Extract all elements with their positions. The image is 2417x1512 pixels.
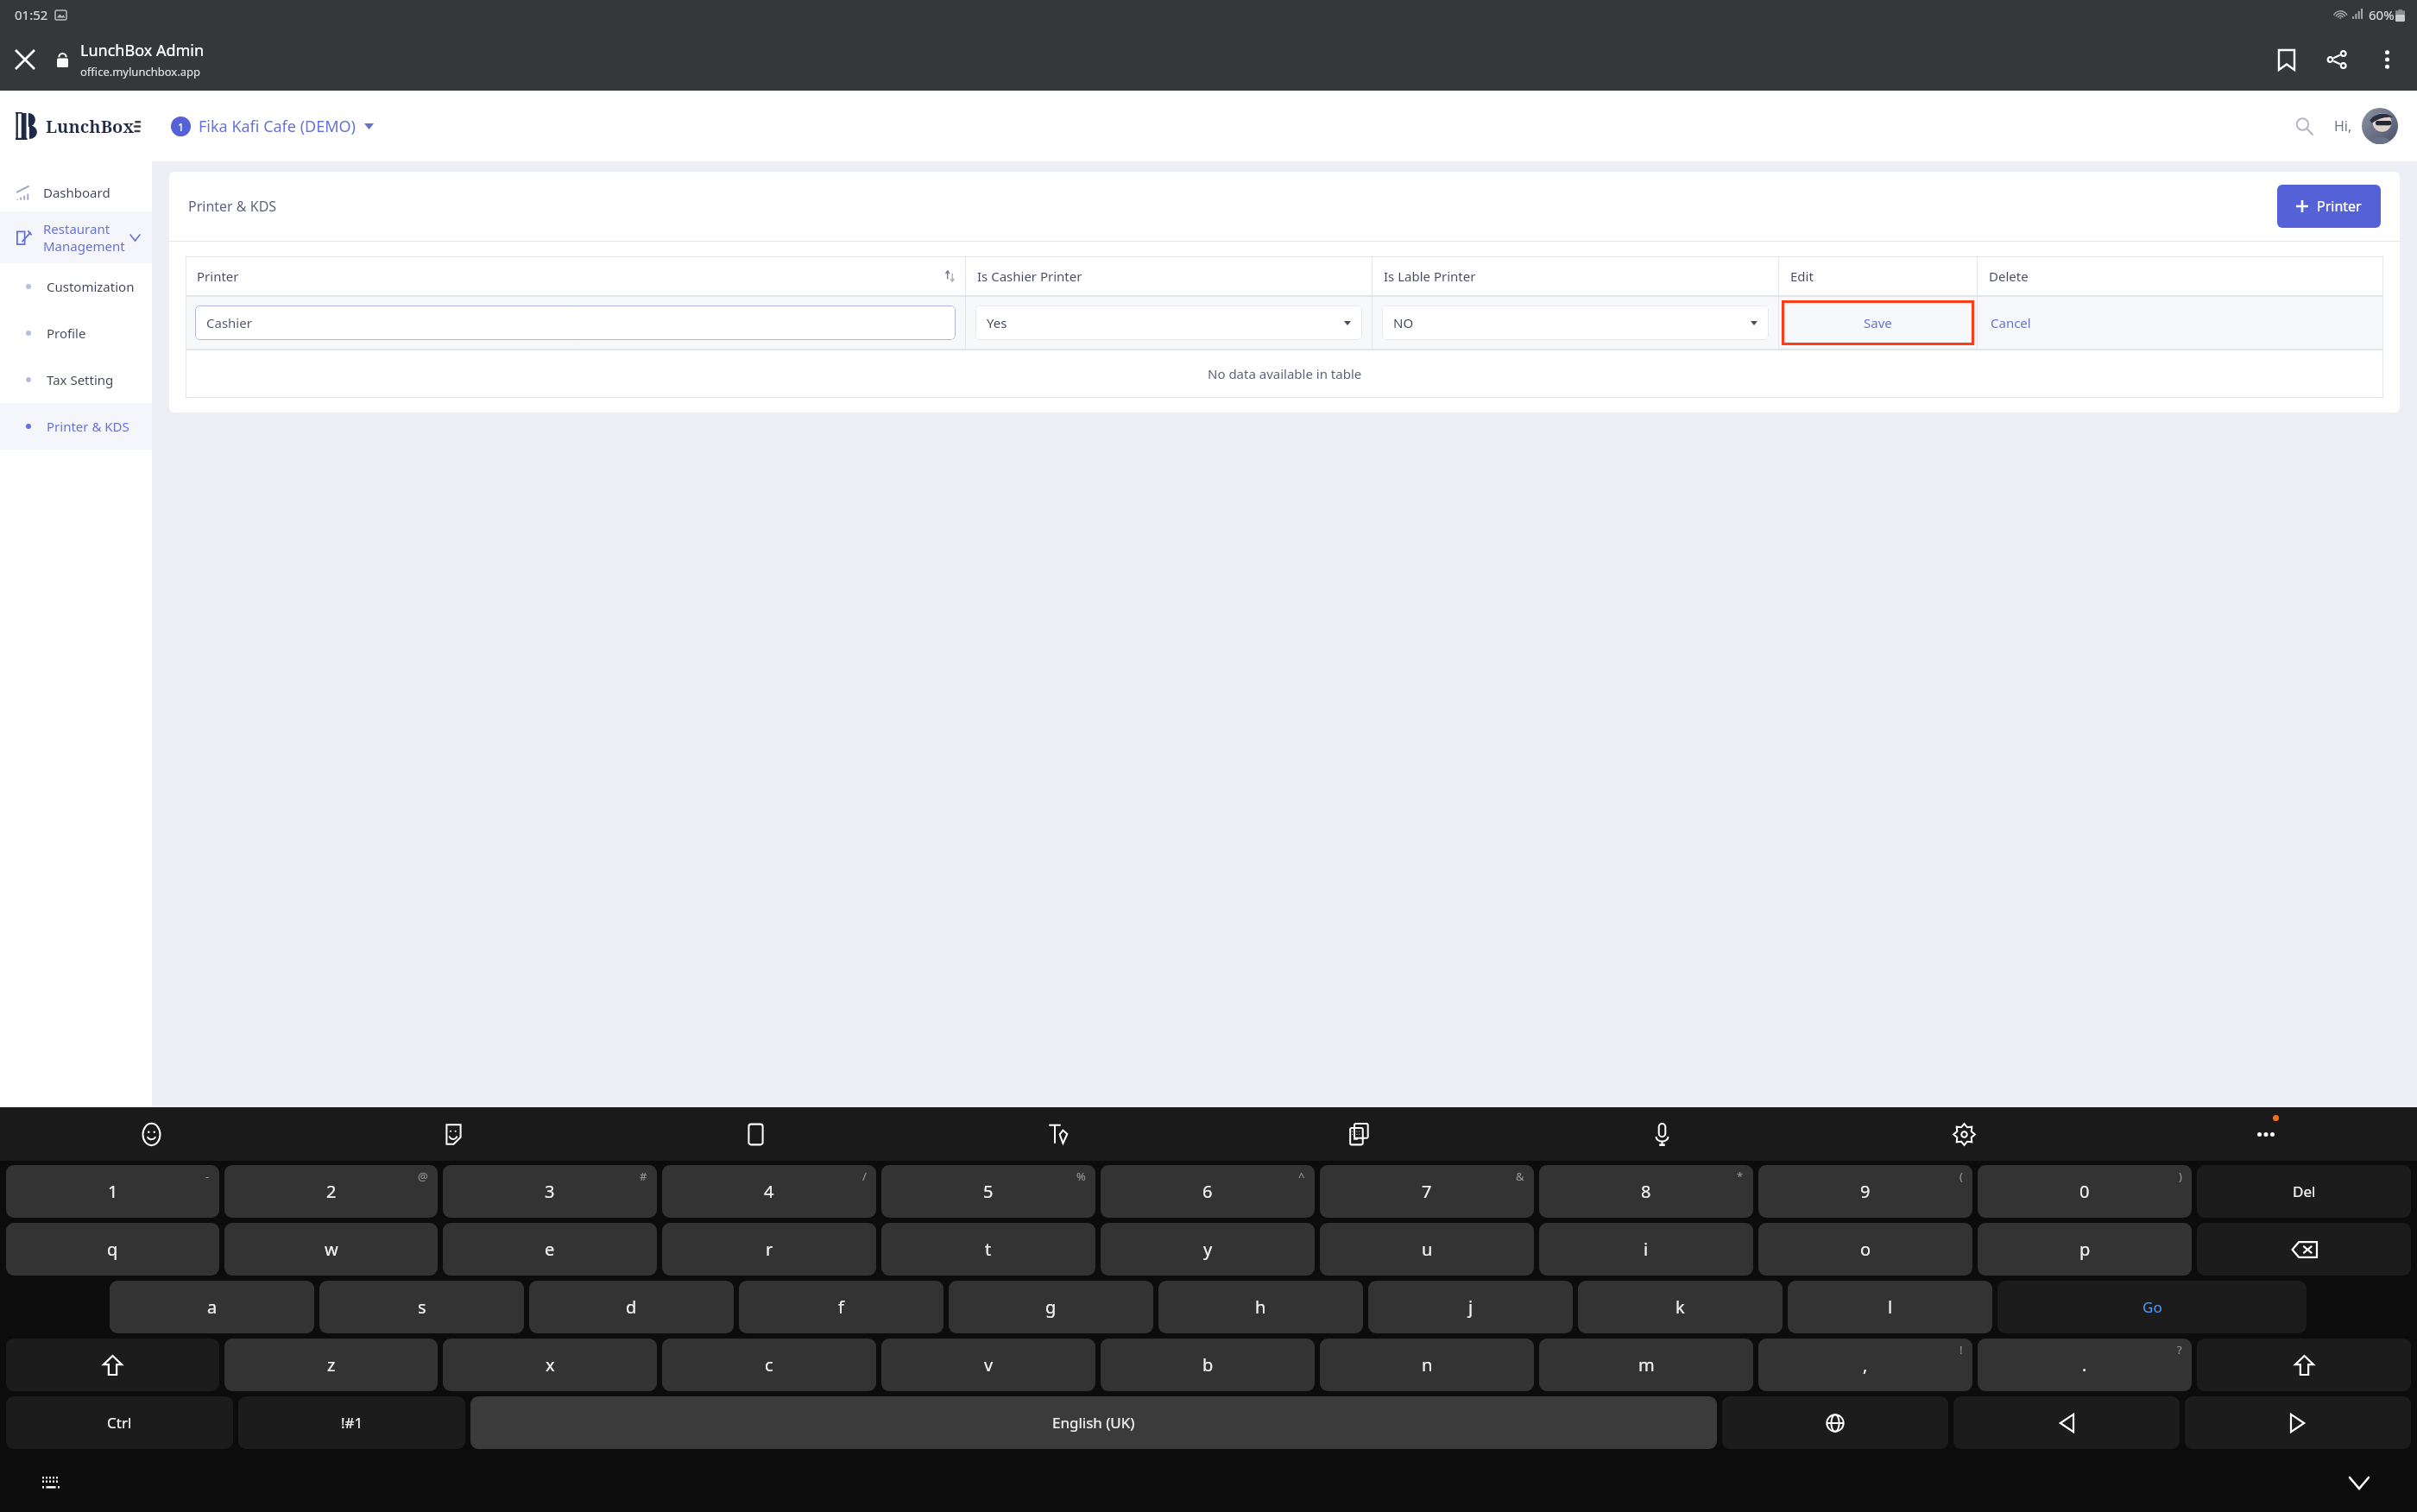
button[interactable]: Go bbox=[1997, 1281, 2307, 1333]
button[interactable]: right bbox=[2185, 1396, 2411, 1449]
button[interactable]: 6 bbox=[1101, 1165, 1315, 1218]
button[interactable]: 0 bbox=[1978, 1165, 2192, 1218]
button[interactable]: 3 bbox=[443, 1165, 657, 1218]
button[interactable]: r bbox=[662, 1223, 876, 1276]
button[interactable]: g bbox=[949, 1281, 1153, 1333]
button[interactable]: Del bbox=[2197, 1165, 2411, 1218]
button[interactable]: Printer bbox=[2277, 185, 2381, 228]
staticText: r bbox=[766, 1238, 773, 1261]
button[interactable]: Text edit bbox=[906, 1107, 1208, 1161]
button[interactable]: k bbox=[1578, 1281, 1783, 1333]
button[interactable]: Close bbox=[0, 35, 50, 85]
button[interactable]: Tax Setting bbox=[0, 356, 152, 403]
button[interactable]: y bbox=[1101, 1223, 1315, 1276]
button[interactable]: Hide keyboard bbox=[2344, 1468, 2374, 1497]
button[interactable]: Bookmark bbox=[2262, 35, 2312, 85]
button[interactable]: Cashier bbox=[195, 306, 956, 340]
button[interactable]: Hide keyboard layout bbox=[38, 1470, 64, 1496]
staticText: f bbox=[838, 1295, 844, 1319]
button[interactable]: i bbox=[1539, 1223, 1753, 1276]
staticText: . bbox=[2082, 1353, 2087, 1377]
button[interactable]: f bbox=[739, 1281, 943, 1333]
staticText: o bbox=[1860, 1238, 1871, 1261]
button[interactable]: n bbox=[1320, 1339, 1534, 1391]
staticText: 4 bbox=[764, 1180, 774, 1203]
button[interactable]: 5 bbox=[881, 1165, 1095, 1218]
button[interactable]: l bbox=[1788, 1281, 1992, 1333]
button[interactable]: shift bbox=[6, 1339, 219, 1391]
staticText: m bbox=[1638, 1353, 1655, 1377]
button[interactable]: c bbox=[662, 1339, 876, 1391]
button[interactable]: s bbox=[319, 1281, 524, 1333]
button[interactable]: t bbox=[881, 1223, 1095, 1276]
button[interactable]: Ctrl bbox=[6, 1396, 233, 1449]
button[interactable]: left bbox=[1953, 1396, 2180, 1449]
button[interactable]: shift bbox=[2197, 1339, 2411, 1391]
button[interactable]: !#1 bbox=[238, 1396, 465, 1449]
button[interactable]: 7 bbox=[1320, 1165, 1534, 1218]
button[interactable]: 1 bbox=[6, 1165, 219, 1218]
staticText: office.mylunchbox.app bbox=[80, 64, 200, 79]
button[interactable]: Voice input bbox=[1511, 1107, 1813, 1161]
button[interactable]: v bbox=[881, 1339, 1095, 1391]
staticText: 3 bbox=[545, 1180, 555, 1203]
button[interactable]: Clipboard bbox=[1208, 1107, 1511, 1161]
button[interactable]: q bbox=[6, 1223, 219, 1276]
button[interactable]: Profile bbox=[0, 310, 152, 356]
button[interactable]: Save bbox=[1782, 300, 1974, 345]
button[interactable]: 1 bbox=[171, 116, 374, 137]
button[interactable]: Share bbox=[2312, 35, 2362, 85]
staticText: ^ bbox=[1298, 1169, 1305, 1184]
button[interactable]: . bbox=[1978, 1339, 2192, 1391]
button[interactable]: Dashboard bbox=[0, 173, 152, 211]
staticText: !#1 bbox=[341, 1413, 363, 1433]
button[interactable]: m bbox=[1539, 1339, 1753, 1391]
button[interactable]: Yes bbox=[975, 306, 1362, 340]
button[interactable]: 2 bbox=[224, 1165, 438, 1218]
button[interactable]: GIF bbox=[604, 1107, 906, 1161]
button[interactable]: , bbox=[1758, 1339, 1972, 1391]
staticText: t bbox=[985, 1238, 992, 1261]
button[interactable]: 8 bbox=[1539, 1165, 1753, 1218]
staticText: Is Lable Printer bbox=[1384, 268, 1476, 285]
button[interactable]: 4 bbox=[662, 1165, 876, 1218]
button[interactable]: globe bbox=[1722, 1396, 1948, 1449]
button[interactable]: Toggle menu bbox=[135, 115, 140, 137]
button[interactable]: English (UK) bbox=[470, 1396, 1717, 1449]
button[interactable]: b bbox=[1101, 1339, 1315, 1391]
button[interactable]: u bbox=[1320, 1223, 1534, 1276]
button[interactable]: Customization bbox=[0, 263, 152, 310]
staticText: LunchBox Admin bbox=[80, 40, 205, 61]
button[interactable]: x bbox=[443, 1339, 657, 1391]
staticText: e bbox=[545, 1238, 555, 1261]
button[interactable]: z bbox=[224, 1339, 438, 1391]
button[interactable]: h bbox=[1158, 1281, 1363, 1333]
button[interactable]: w bbox=[224, 1223, 438, 1276]
staticText: NO bbox=[1393, 314, 1414, 331]
button[interactable]: d bbox=[529, 1281, 734, 1333]
button[interactable]: Cancel bbox=[1991, 314, 2031, 331]
button[interactable]: Printer & KDS bbox=[0, 403, 152, 450]
button[interactable]: Search bbox=[2286, 108, 2322, 144]
staticText: 1 bbox=[178, 120, 184, 134]
button[interactable]: Sticker bbox=[302, 1107, 604, 1161]
button[interactable]: p bbox=[1978, 1223, 2192, 1276]
button[interactable]: o bbox=[1758, 1223, 1972, 1276]
button[interactable]: More bbox=[2115, 1107, 2417, 1161]
button[interactable]: j bbox=[1368, 1281, 1573, 1333]
staticText: 5 bbox=[983, 1180, 994, 1203]
staticText: n bbox=[1422, 1353, 1433, 1377]
button[interactable]: Restaurant bbox=[0, 211, 152, 263]
button[interactable]: bksp bbox=[2197, 1223, 2411, 1276]
button[interactable]: Settings bbox=[1813, 1107, 2115, 1161]
button[interactable]: 9 bbox=[1758, 1165, 1972, 1218]
staticText: Is Cashier Printer bbox=[977, 268, 1082, 285]
staticText: Cancel bbox=[1991, 314, 2031, 331]
button[interactable]: More options bbox=[2362, 35, 2412, 85]
staticText: Delete bbox=[1989, 268, 2029, 285]
button[interactable]: a bbox=[110, 1281, 314, 1333]
button[interactable]: Profile bbox=[2362, 108, 2398, 144]
button[interactable]: e bbox=[443, 1223, 657, 1276]
button[interactable]: Emoji bbox=[0, 1107, 302, 1161]
button[interactable]: NO bbox=[1382, 306, 1769, 340]
